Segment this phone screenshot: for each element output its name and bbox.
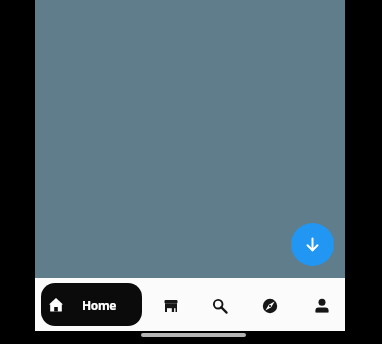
button[interactable] bbox=[206, 292, 234, 320]
staticText: Home bbox=[82, 297, 116, 313]
button[interactable] bbox=[308, 292, 336, 320]
button[interactable] bbox=[256, 292, 284, 320]
button[interactable] bbox=[157, 292, 185, 320]
button[interactable]: Home bbox=[41, 283, 142, 326]
button[interactable] bbox=[291, 223, 334, 266]
